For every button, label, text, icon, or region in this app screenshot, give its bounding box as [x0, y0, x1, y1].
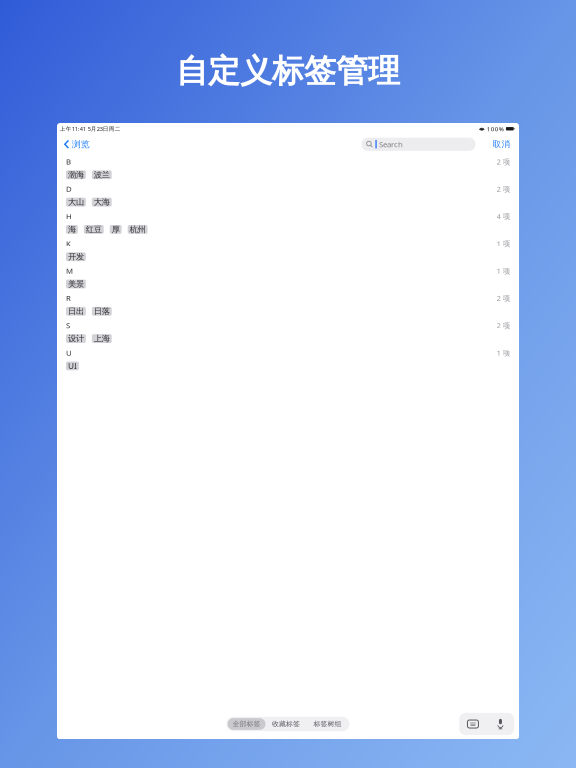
staticText: 取消: [492, 139, 510, 150]
staticText: 浏览: [72, 139, 90, 150]
button[interactable]: 浏览: [57, 139, 90, 150]
staticText: B: [66, 156, 71, 167]
staticText: 2 项: [496, 293, 510, 303]
button[interactable]: UI: [66, 361, 79, 370]
staticText: 2 项: [496, 320, 510, 331]
staticText: D: [66, 184, 72, 194]
staticText: 标签树组: [313, 720, 341, 728]
button[interactable]: 上海: [92, 334, 112, 343]
staticText: 上午11:41 5月23日周二: [60, 125, 121, 132]
staticText: 1 项: [496, 265, 510, 276]
staticText: 4 项: [496, 211, 510, 221]
staticText: S: [66, 320, 70, 331]
button[interactable]: 杭州: [128, 225, 147, 234]
staticText: 全部标签: [232, 720, 260, 728]
button[interactable]: Dismiss keyboard: [459, 720, 487, 728]
staticText: 红豆: [86, 224, 102, 235]
staticText: 日出: [68, 306, 84, 316]
staticText: K: [66, 238, 71, 249]
staticText: 日落: [94, 306, 110, 316]
staticText: 杭州: [130, 224, 146, 235]
button[interactable]: 全部标签: [227, 718, 265, 730]
button[interactable]: 开发: [66, 252, 86, 261]
button[interactable]: 美景: [66, 280, 86, 288]
button[interactable]: 设计: [66, 334, 86, 343]
staticText: 上海: [94, 333, 110, 344]
staticText: UI: [68, 360, 77, 372]
button[interactable]: 大海: [92, 198, 112, 206]
staticText: 100%: [487, 125, 504, 133]
button[interactable]: 波兰: [92, 170, 112, 179]
staticText: 开发: [68, 251, 84, 262]
staticText: 1 项: [496, 238, 510, 249]
staticText: 厚: [112, 224, 120, 235]
staticText: 2 项: [496, 184, 510, 194]
staticText: M: [66, 265, 73, 276]
staticText: 美景: [68, 279, 84, 289]
staticText: 2 项: [496, 156, 510, 167]
button[interactable]: 厚: [110, 225, 122, 234]
button[interactable]: 收藏标签: [265, 718, 306, 730]
staticText: 大山: [68, 197, 84, 207]
staticText: 自定义标签管理: [176, 51, 400, 91]
staticText: H: [66, 211, 72, 221]
button[interactable]: 海: [66, 225, 78, 234]
button[interactable]: 取消: [482, 139, 519, 150]
staticText: 波兰: [94, 170, 110, 180]
button[interactable]: 红豆: [84, 225, 104, 234]
staticText: 收藏标签: [272, 720, 300, 728]
staticText: 设计: [68, 333, 84, 344]
button[interactable]: 日落: [92, 307, 112, 316]
staticText: U: [66, 347, 72, 358]
button[interactable]: 标签树组: [306, 718, 348, 730]
button[interactable]: 大山: [66, 198, 86, 206]
staticText: R: [66, 293, 71, 303]
staticText: 大海: [94, 197, 110, 207]
button[interactable]: 渤海: [66, 170, 86, 179]
staticText: 渤海: [68, 170, 84, 180]
staticText: 海: [68, 224, 76, 235]
button[interactable]: 日出: [66, 307, 86, 316]
button[interactable]: Dictation: [487, 719, 514, 729]
staticText: Search: [379, 139, 403, 149]
staticText: 1 项: [496, 347, 510, 358]
